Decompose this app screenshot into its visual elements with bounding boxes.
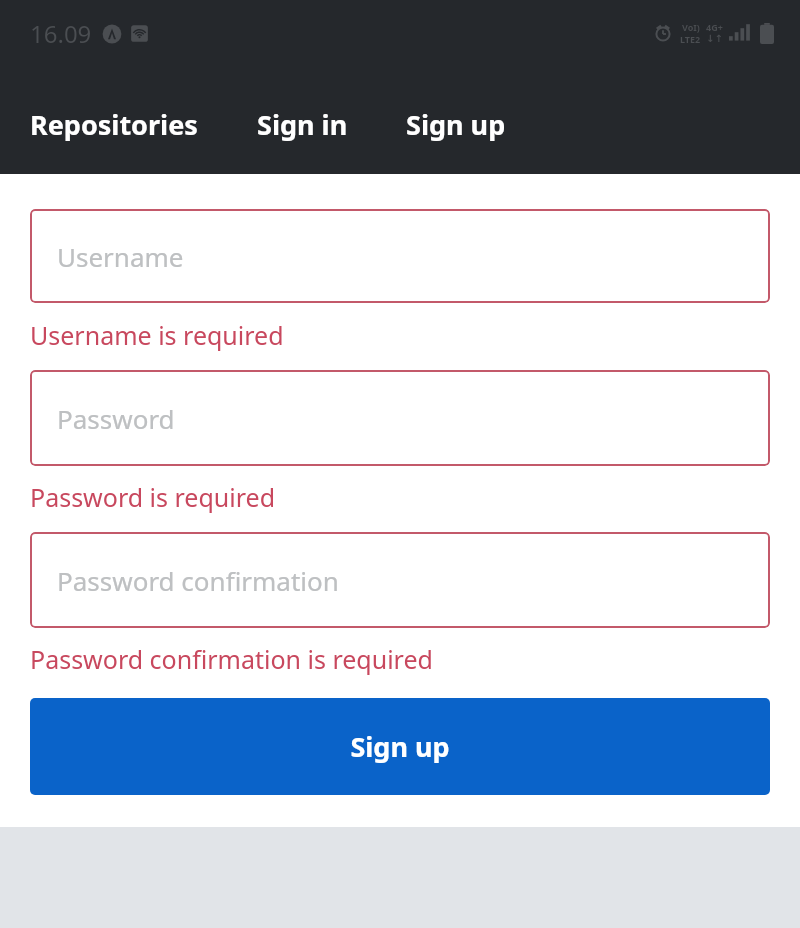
button[interactable]: Repositories: [30, 100, 198, 149]
staticText: Sign up: [406, 106, 506, 143]
staticText: Password confirmation: [57, 563, 339, 598]
staticText: Sign in: [257, 106, 348, 143]
button[interactable]: Username: [30, 209, 770, 303]
button[interactable]: Password: [30, 370, 770, 466]
staticText: VoI): [682, 21, 700, 33]
staticText: LTE2: [680, 33, 701, 45]
staticText: 16.09: [30, 17, 92, 50]
staticText: Password confirmation is required: [30, 642, 433, 676]
staticText: Username is required: [30, 318, 284, 352]
staticText: Sign up: [350, 728, 450, 765]
staticText: Password: [57, 401, 175, 436]
button[interactable]: Sign up: [30, 698, 770, 795]
staticText: ↓↑: [706, 33, 723, 45]
staticText: 4G+: [706, 21, 723, 33]
button[interactable]: Sign in: [257, 100, 348, 149]
staticText: Repositories: [30, 106, 198, 143]
staticText: Password is required: [30, 480, 276, 514]
button[interactable]: Sign up: [406, 100, 506, 149]
button[interactable]: Password confirmation: [30, 532, 770, 628]
staticText: Username: [57, 239, 184, 274]
